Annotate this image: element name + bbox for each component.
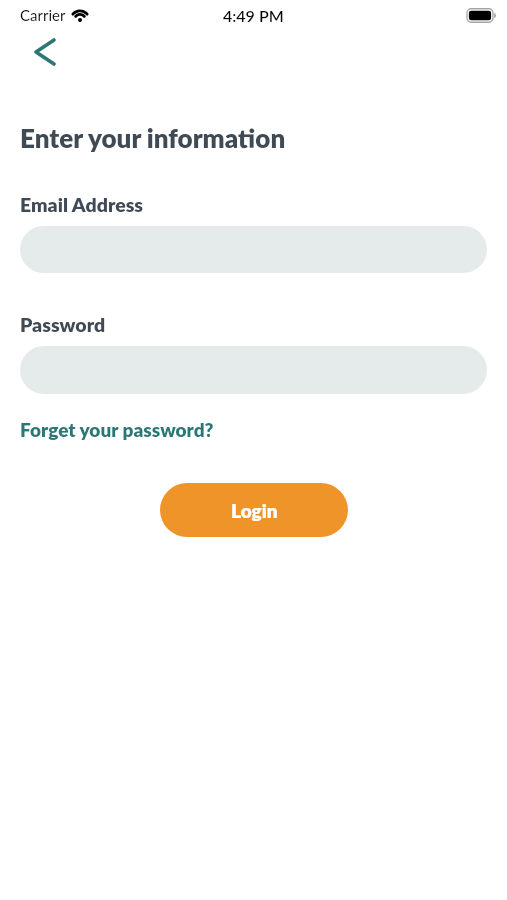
staticText: Carrier: [20, 6, 66, 24]
staticText: Email Address: [20, 193, 144, 216]
button[interactable]: Login: [160, 483, 348, 537]
button[interactable]: [20, 226, 487, 273]
button[interactable]: [20, 346, 487, 394]
staticText: Password: [20, 313, 106, 336]
staticText: Login: [231, 499, 278, 522]
staticText: 4:49 PM: [223, 6, 284, 25]
button[interactable]: [30, 38, 60, 66]
staticText: Enter your information: [20, 122, 286, 153]
button[interactable]: Forget your password?: [20, 418, 214, 441]
